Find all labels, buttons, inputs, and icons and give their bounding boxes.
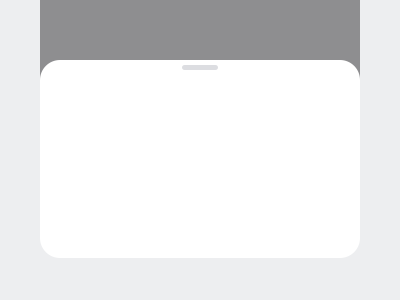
button[interactable]: Drag to dismiss xyxy=(182,60,218,70)
button[interactable]: Dismiss xyxy=(40,0,360,80)
